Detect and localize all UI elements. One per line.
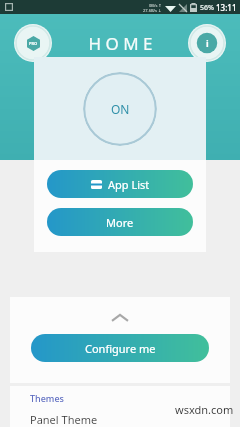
staticText: Configure me bbox=[85, 341, 156, 356]
button[interactable]: More bbox=[47, 208, 193, 236]
staticText: Themes bbox=[30, 392, 64, 404]
button[interactable]: Info bbox=[188, 24, 226, 62]
staticText: i bbox=[206, 37, 209, 49]
button[interactable]: ON bbox=[83, 72, 157, 146]
staticText: 27.6B/s ↓ bbox=[143, 8, 162, 13]
staticText: 0B/s ↑ bbox=[149, 3, 162, 8]
staticText: PRO bbox=[29, 41, 38, 46]
staticText: 56% bbox=[200, 3, 214, 13]
button[interactable]: Pro version bbox=[14, 24, 52, 62]
staticText: 13:11 bbox=[216, 2, 237, 13]
button[interactable]: Configure me bbox=[31, 334, 209, 362]
staticText: Panel Theme bbox=[30, 412, 98, 427]
button[interactable]: Collapse bbox=[100, 311, 140, 325]
staticText: ON bbox=[111, 101, 130, 117]
staticText: wsxdn.com bbox=[175, 402, 234, 417]
staticText: More bbox=[106, 215, 134, 230]
button[interactable]: Themes bbox=[10, 386, 230, 427]
button[interactable]: App List bbox=[47, 170, 193, 198]
staticText: H O M E bbox=[88, 32, 153, 55]
staticText: App List bbox=[108, 177, 150, 192]
